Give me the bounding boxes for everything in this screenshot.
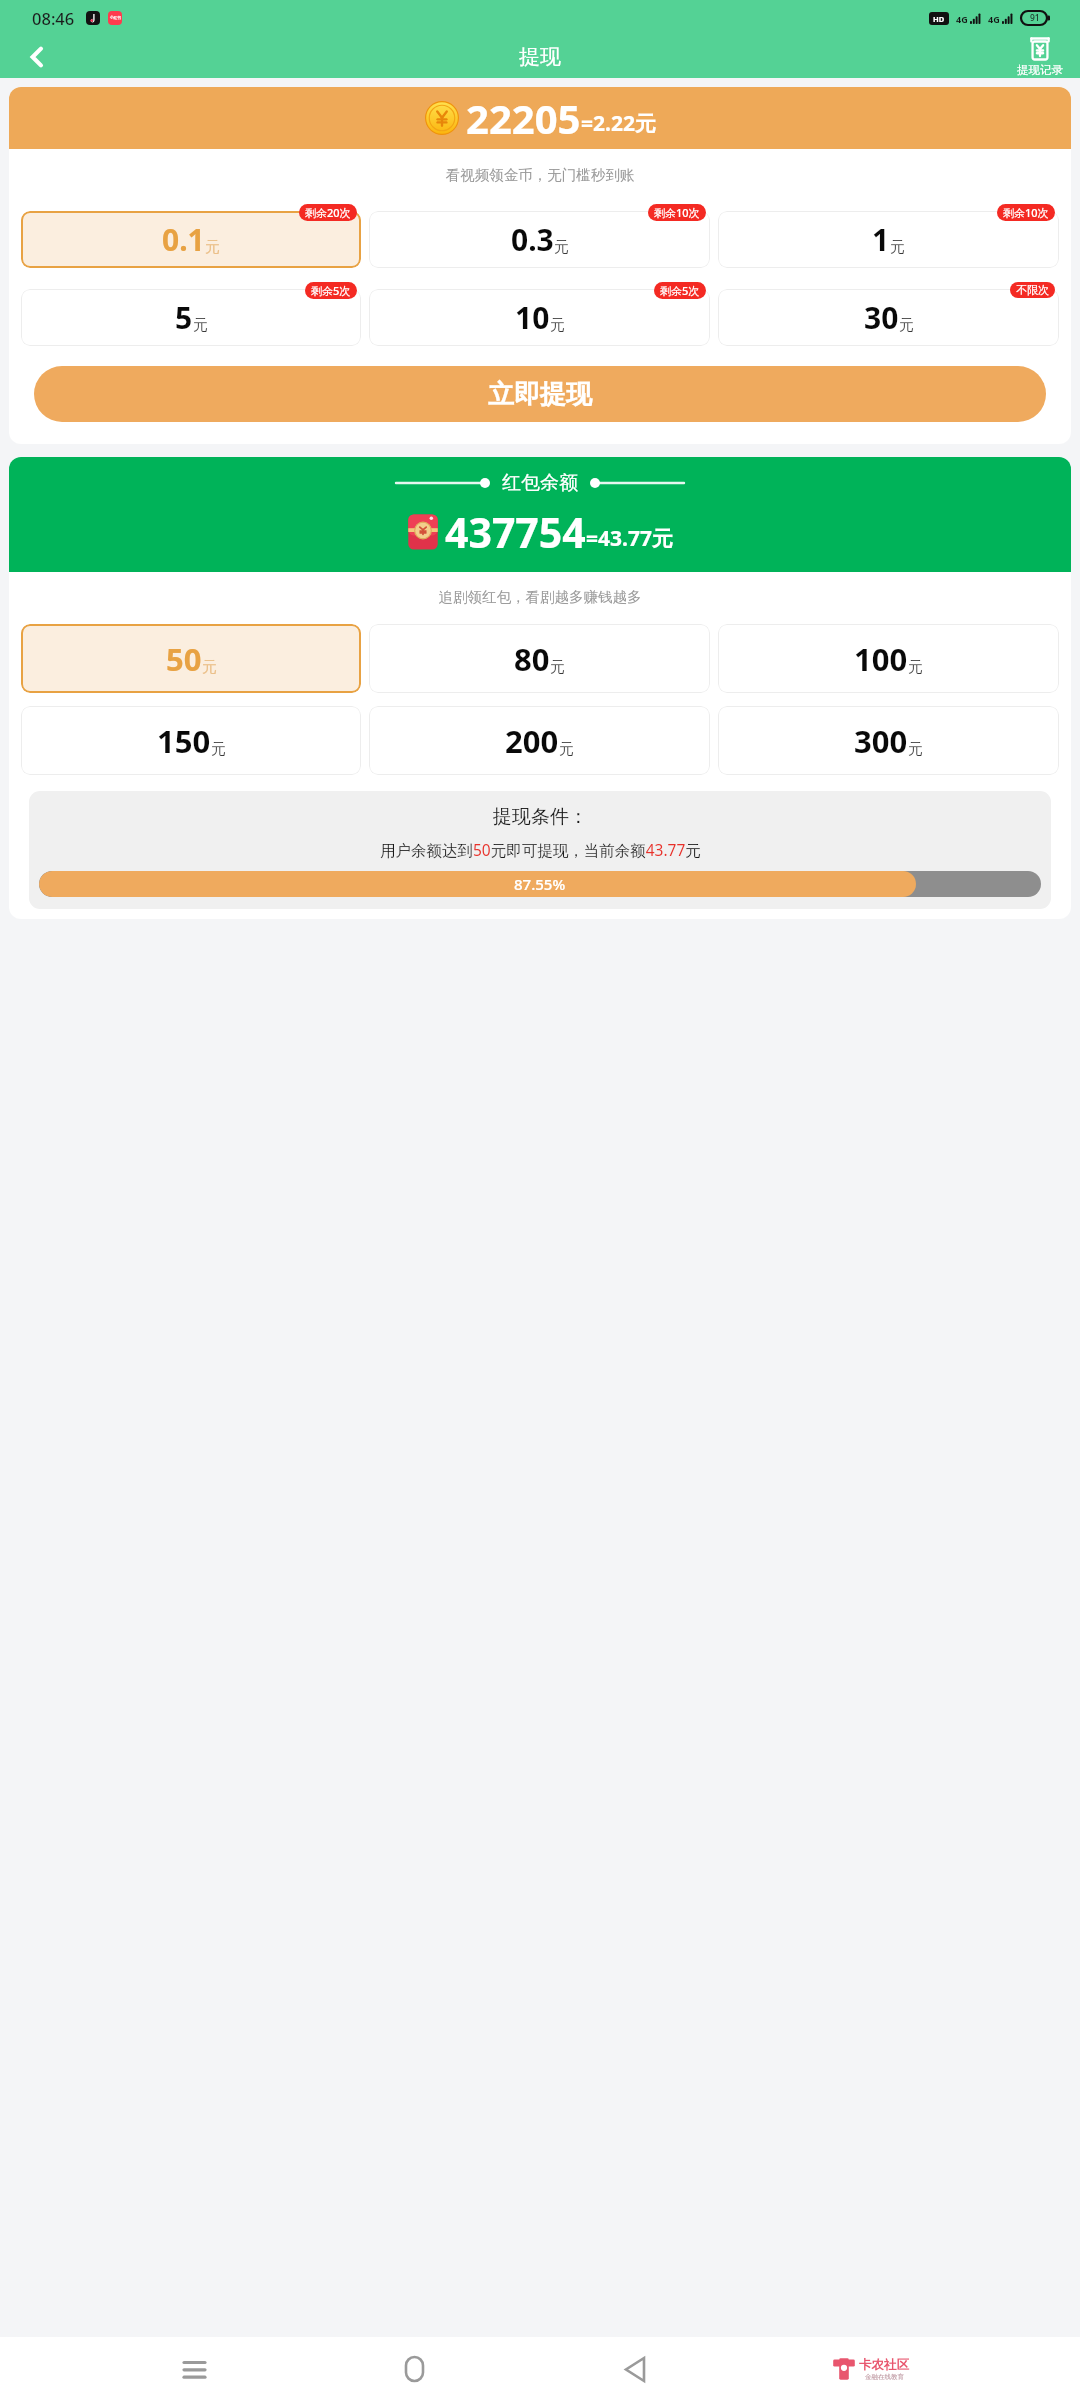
button[interactable]: 300 [718,706,1059,775]
button[interactable]: 1 [718,211,1059,268]
staticText: 5 [175,297,193,338]
staticText: 提现 [519,44,561,70]
staticText: 追剧领红包，看剧越多赚钱越多 [9,588,1071,606]
staticText: 200 [505,720,559,762]
staticText: 300 [854,720,908,762]
staticText: 0.1 [162,219,205,260]
staticText: 元 [908,740,923,759]
staticText: =43.77元 [586,524,673,553]
staticText: 红包余额 [502,471,578,495]
staticText: =2.22元 [581,109,656,138]
button[interactable]: 提现记录 [1013,36,1067,77]
staticText: 元 [193,316,208,335]
staticText: 87.55% [514,874,566,894]
button[interactable]: Home [387,2342,441,2396]
staticText: 剩余20次 [305,205,351,220]
staticText: 91 [1030,12,1040,24]
staticText: 用户余额达到50元即可提现，当前余额43.77元 [380,839,701,860]
staticText: 剩余5次 [311,283,351,298]
staticText: 10 [515,297,550,338]
staticText: 元 [559,740,574,759]
staticText: HD [933,14,945,24]
staticText: 元 [550,658,565,677]
staticText: 元 [550,316,565,335]
staticText: 金融在线教育 [865,2373,904,2381]
staticText: 150 [157,720,211,762]
staticText: 1 [872,219,890,260]
staticText: 小红书 [110,16,121,21]
staticText: 30 [864,297,899,338]
button[interactable]: 50 [21,624,361,693]
button[interactable]: 30 [718,289,1059,346]
staticText: 元 [908,658,923,677]
staticText: 50 [166,638,202,680]
button[interactable]: Back [14,35,60,78]
button[interactable]: 10 [369,289,710,346]
staticText: 元 [890,238,905,257]
button[interactable]: 100 [718,624,1059,693]
staticText: 提现记录 [1017,63,1063,77]
staticText: 卡农社区 [859,2357,909,2373]
staticText: 剩余10次 [654,205,700,220]
button[interactable]: 80 [369,624,710,693]
staticText: 4G [956,13,968,25]
staticText: 提现条件： [493,805,588,829]
staticText: 元 [554,238,569,257]
button[interactable]: 5 [21,289,361,346]
staticText: 100 [854,638,908,680]
staticText: 80 [514,638,550,680]
staticText: 立即提现 [488,378,592,411]
staticText: 剩余10次 [1003,205,1049,220]
button[interactable]: 200 [369,706,710,775]
button[interactable]: 150 [21,706,361,775]
button[interactable]: 0.3 [369,211,710,268]
staticText: 元 [205,238,220,257]
button[interactable]: 0.1 [21,211,361,268]
staticText: 看视频领金币，无门槛秒到账 [9,166,1071,184]
staticText: 437754 [445,504,586,560]
staticText: 22205 [466,91,581,145]
button[interactable]: Back [608,2342,662,2396]
staticText: 08:46 [32,7,75,29]
staticText: 元 [211,740,226,759]
staticText: 元 [899,316,914,335]
button[interactable]: 卡农社区 [828,2353,913,2385]
staticText: 不限次 [1016,283,1049,297]
staticText: 元 [202,658,217,677]
button[interactable]: Recent apps [167,2342,221,2396]
button[interactable]: 立即提现 [34,366,1046,422]
staticText: 0.3 [511,219,554,260]
staticText: 剩余5次 [660,283,700,298]
staticText: 4G [988,13,1000,25]
